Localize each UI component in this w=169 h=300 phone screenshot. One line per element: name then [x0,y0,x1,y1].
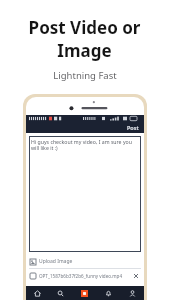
button[interactable]: Notifications [96,286,120,300]
button[interactable]: Search [49,286,72,300]
staticText: Post Video or Image [0,16,169,62]
staticText: Hi guys checkout my video, I am sure you… [31,138,139,152]
button[interactable]: Post [122,123,144,132]
staticText: OPT_1587b6b37f2b6_funny video.mp4 [39,273,123,279]
staticText: Lightning Fast [53,69,117,82]
staticText: Post [127,124,139,131]
button[interactable]: Home [26,286,49,300]
button[interactable]: Remove file [132,272,140,280]
staticText: Upload Image [39,258,73,265]
button[interactable]: Post [72,286,96,300]
button[interactable]: Profile [120,286,144,300]
button[interactable]: OPT_1587b6b37f2b6_funny video.mp4 [29,269,141,283]
button[interactable]: Upload Image [29,255,141,268]
button[interactable]: Hi guys checkout my video, I am sure you… [29,136,141,252]
